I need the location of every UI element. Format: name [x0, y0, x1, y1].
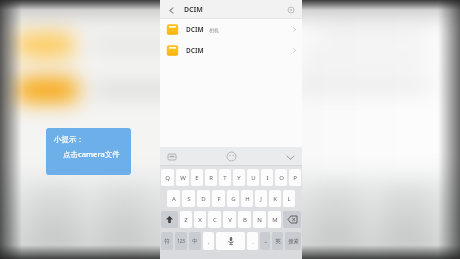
button[interactable]: 123 — [175, 232, 187, 250]
staticText: J — [260, 195, 262, 203]
staticText: X — [198, 216, 202, 224]
button[interactable]: Y — [233, 169, 245, 186]
staticText: O — [279, 174, 284, 182]
staticText: P — [293, 174, 297, 182]
button[interactable]: I — [261, 169, 273, 186]
staticText: E — [195, 174, 199, 182]
button[interactable]: Backspace — [283, 211, 301, 228]
button[interactable]: K — [269, 190, 281, 207]
staticText: 相机 — [209, 27, 219, 33]
button[interactable]: E — [191, 169, 203, 186]
button[interactable]: B — [238, 211, 251, 228]
staticText: A — [172, 195, 176, 203]
staticText: I — [266, 174, 269, 182]
button[interactable]: M — [268, 211, 281, 228]
button[interactable]: Input method — [166, 151, 177, 162]
button[interactable]: Q — [161, 169, 174, 186]
button[interactable]: A — [167, 190, 180, 207]
staticText: DCIM — [186, 46, 204, 55]
staticText: C — [213, 216, 217, 224]
button[interactable]: Shift — [161, 211, 178, 228]
staticText: Z — [184, 216, 188, 224]
staticText: F — [217, 195, 221, 203]
staticText: K — [273, 195, 277, 203]
button[interactable]: Back — [164, 3, 178, 17]
button[interactable]: Settings — [285, 4, 297, 16]
staticText: M — [272, 216, 278, 224]
staticText: 符 — [164, 238, 170, 245]
button[interactable]: X — [194, 211, 206, 228]
button[interactable]: G — [227, 190, 239, 207]
staticText: DCIM — [184, 5, 203, 15]
button[interactable]: U — [247, 169, 259, 186]
staticText: 点击camera文件 — [63, 149, 120, 159]
button[interactable]: L — [283, 190, 295, 207]
staticText: 搜索 — [288, 238, 299, 245]
button[interactable]: R — [205, 169, 217, 186]
button[interactable]: Hide keyboard — [284, 151, 296, 163]
button[interactable]: 中 — [189, 232, 201, 250]
staticText: U — [251, 174, 256, 182]
button[interactable]: DCIM — [160, 19, 302, 40]
staticText: R — [209, 174, 213, 182]
button[interactable]: 小提示： — [46, 128, 131, 175]
staticText: DCIM — [186, 25, 204, 34]
button[interactable]: . — [247, 232, 258, 250]
staticText: ⌄ — [263, 238, 268, 244]
staticText: . — [252, 238, 254, 245]
button[interactable]: ⌄ — [260, 232, 270, 250]
button[interactable]: 搜索 — [285, 232, 301, 250]
button[interactable]: C — [208, 211, 221, 228]
button[interactable]: P — [289, 169, 301, 186]
staticText: Y — [237, 174, 241, 182]
staticText: W — [180, 174, 186, 182]
button[interactable]: Z — [180, 211, 192, 228]
button[interactable]: 符 — [161, 232, 173, 250]
staticText: 小提示： — [54, 135, 84, 144]
staticText: B — [243, 216, 247, 224]
staticText: V — [228, 216, 232, 224]
staticText: T — [223, 174, 227, 182]
staticText: 123 — [177, 238, 185, 244]
staticText: N — [257, 216, 262, 224]
staticText: G — [231, 195, 236, 203]
button[interactable]: S — [182, 190, 195, 207]
button[interactable]: 英 — [272, 232, 283, 250]
button[interactable]: Emoji — [225, 150, 238, 163]
staticText: L — [287, 195, 291, 203]
button[interactable]: N — [253, 211, 266, 228]
staticText: 英 — [275, 238, 281, 245]
staticText: , — [208, 238, 210, 245]
button[interactable]: T — [219, 169, 231, 186]
button[interactable]: O — [275, 169, 287, 186]
staticText: Q — [165, 174, 170, 182]
staticText: S — [187, 195, 191, 203]
button[interactable]: D — [197, 190, 210, 207]
button[interactable]: F — [212, 190, 225, 207]
button[interactable]: W — [176, 169, 189, 186]
button[interactable]: Space / Voice input — [216, 232, 245, 250]
staticText: D — [201, 195, 206, 203]
button[interactable]: V — [223, 211, 236, 228]
staticText: H — [245, 195, 250, 203]
button[interactable]: DCIM — [160, 40, 302, 61]
button[interactable]: J — [255, 190, 267, 207]
staticText: 中 — [192, 238, 198, 245]
button[interactable]: , — [203, 232, 214, 250]
button[interactable]: H — [241, 190, 253, 207]
